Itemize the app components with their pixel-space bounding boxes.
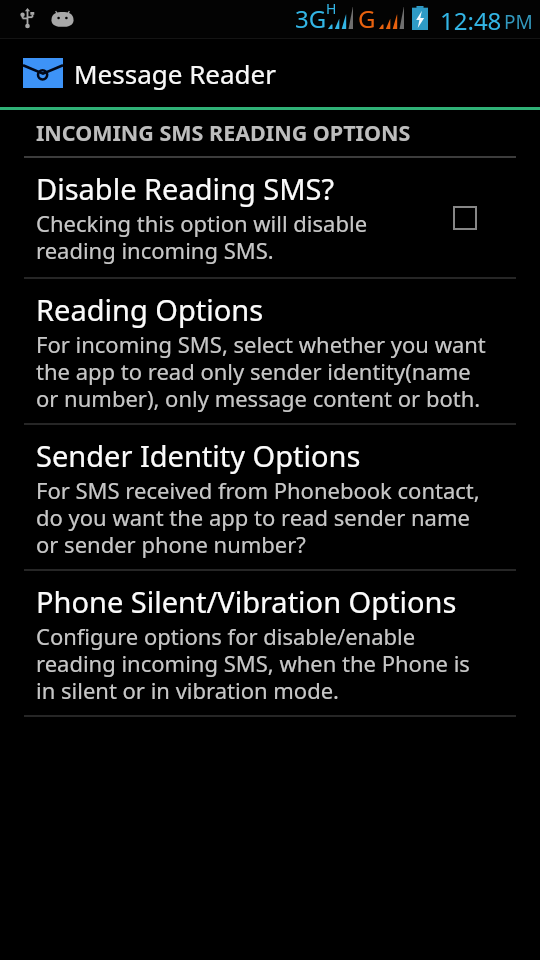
staticText: Reading Options [36,290,264,329]
button[interactable]: Sender Identity Options [0,425,540,571]
staticText: Message Reader [74,56,276,91]
staticText: PM [504,9,533,35]
button[interactable]: Disable Reading SMS? [0,158,540,279]
other: Battery charging [412,6,428,30]
staticText: For SMS received from Phonebook contact,… [36,478,480,559]
button[interactable]: Message Reader home [0,39,540,107]
staticText: INCOMING SMS READING OPTIONS [36,118,411,147]
staticText: Sender Identity Options [36,436,361,475]
staticText: Phone Silent/Vibration Options [36,582,457,621]
staticText: Checking this option will disable readin… [36,211,368,265]
staticText: For incoming SMS, select whether you wan… [36,332,486,413]
other: Android [51,9,74,27]
other: Message Reader home [23,58,63,88]
staticText: Configure options for disable/enable rea… [36,624,470,705]
staticText: 3G [295,2,327,35]
button[interactable]: Reading Options [0,279,540,425]
staticText: 12:48 [440,4,502,37]
staticText: H [326,0,337,18]
button[interactable]: Phone Silent/Vibration Options [0,571,540,717]
staticText: G [358,2,376,35]
staticText: Disable Reading SMS? [36,169,335,208]
other: USB connected [21,8,34,28]
